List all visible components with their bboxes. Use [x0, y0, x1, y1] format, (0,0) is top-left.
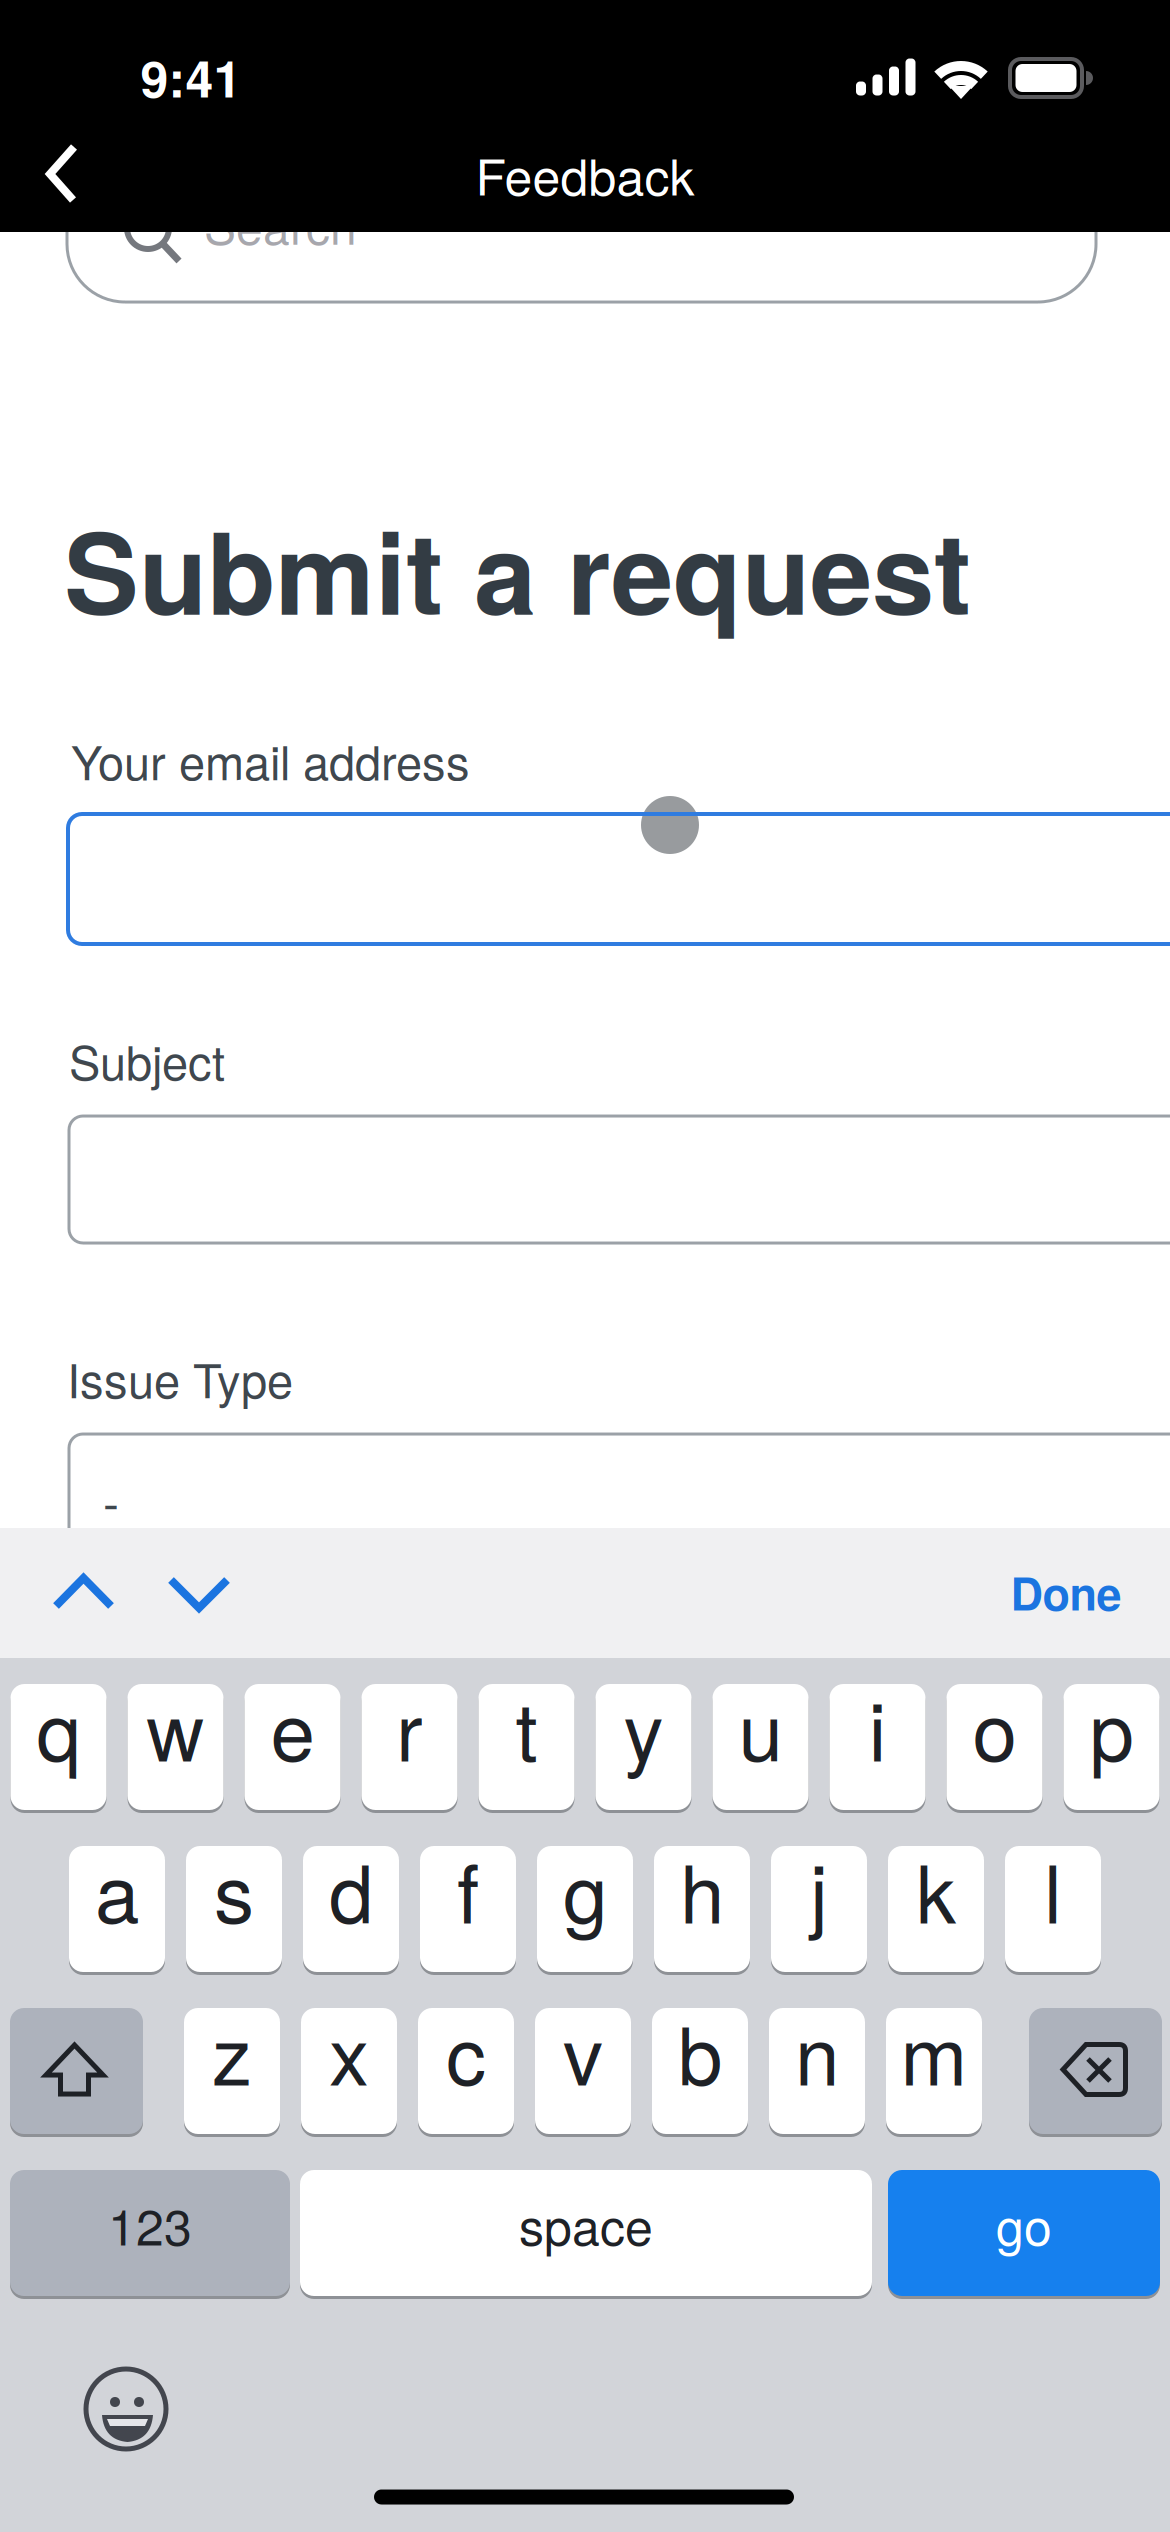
button[interactable]: j	[771, 1846, 867, 1972]
staticText: h	[680, 1832, 724, 1946]
button[interactable]: x	[301, 2008, 397, 2134]
button[interactable]: space	[300, 2170, 872, 2296]
button[interactable]: r	[361, 1684, 457, 1810]
staticText: n	[795, 1994, 839, 2108]
staticText: k	[916, 1832, 956, 1946]
staticText: z	[212, 1994, 252, 2108]
staticText: y	[623, 1670, 663, 1784]
button[interactable]: p	[1063, 1684, 1159, 1810]
button[interactable]: d	[303, 1846, 399, 1972]
button[interactable]: m	[886, 2008, 982, 2134]
button[interactable]: g	[537, 1846, 633, 1972]
staticText: Your email address	[71, 726, 470, 794]
button[interactable]: b	[652, 2008, 748, 2134]
button[interactable]: Issue Type	[69, 1434, 1170, 1574]
button[interactable]: a	[69, 1846, 165, 1972]
staticText: m	[900, 1994, 967, 2108]
button[interactable]: Search	[67, 174, 1096, 302]
staticText: a	[95, 1832, 139, 1946]
button[interactable]: go	[888, 2170, 1160, 2296]
button[interactable]: Emoji	[81, 2364, 171, 2454]
staticText: r	[396, 1670, 423, 1784]
staticText: Subject	[69, 1026, 225, 1094]
staticText: q	[36, 1670, 80, 1784]
button[interactable]: Next field	[149, 1542, 249, 1642]
button[interactable]: Delete	[1029, 2008, 1162, 2134]
staticText: w	[146, 1670, 204, 1784]
button[interactable]: o	[946, 1684, 1042, 1810]
button[interactable]: l	[1005, 1846, 1101, 1972]
staticText: Search	[204, 190, 357, 258]
staticText: l	[1044, 1832, 1062, 1946]
staticText: Feedback	[475, 138, 694, 210]
staticText: -	[103, 1466, 119, 1534]
staticText: i	[868, 1670, 886, 1784]
button[interactable]: s	[186, 1846, 282, 1972]
button[interactable]: 123	[10, 2170, 290, 2296]
staticText: d	[329, 1832, 373, 1946]
staticText: p	[1089, 1670, 1133, 1784]
staticText: 123	[108, 2188, 192, 2260]
button[interactable]: t	[478, 1684, 574, 1810]
staticText: g	[563, 1832, 607, 1946]
staticText: b	[678, 1994, 722, 2108]
button[interactable]: q	[10, 1684, 106, 1810]
staticText: Issue Type	[67, 1344, 293, 1412]
staticText: x	[329, 1994, 369, 2108]
button[interactable]: w	[127, 1684, 223, 1810]
button[interactable]: Back	[22, 124, 102, 224]
staticText: f	[457, 1832, 479, 1946]
staticText: j	[810, 1832, 828, 1946]
button[interactable]: Shift	[10, 2008, 143, 2134]
button[interactable]: n	[769, 2008, 865, 2134]
button[interactable]: u	[712, 1684, 808, 1810]
button[interactable]: z	[184, 2008, 280, 2134]
staticText: t	[515, 1670, 537, 1784]
button[interactable]: i	[829, 1684, 925, 1810]
button[interactable]: h	[654, 1846, 750, 1972]
staticText: space	[519, 2188, 653, 2260]
staticText: s	[214, 1832, 254, 1946]
staticText: go	[996, 2188, 1052, 2260]
staticText: v	[563, 1994, 603, 2108]
staticText: e	[270, 1670, 314, 1784]
button[interactable]: Subject	[69, 1116, 1170, 1243]
button[interactable]: Previous field	[33, 1542, 133, 1642]
staticText: 9:41	[140, 41, 241, 113]
staticText: o	[972, 1670, 1016, 1784]
button[interactable]: v	[535, 2008, 631, 2134]
button[interactable]: y	[595, 1684, 691, 1810]
staticText: u	[738, 1670, 782, 1784]
button[interactable]: f	[420, 1846, 516, 1972]
button[interactable]: e	[244, 1684, 340, 1810]
staticText: Done	[1010, 1560, 1121, 1624]
button[interactable]: Done	[986, 1547, 1146, 1637]
staticText: Submit a request	[64, 489, 971, 649]
button[interactable]: Your email address	[68, 814, 1170, 944]
button[interactable]: k	[888, 1846, 984, 1972]
staticText: c	[446, 1994, 486, 2108]
button[interactable]: c	[418, 2008, 514, 2134]
